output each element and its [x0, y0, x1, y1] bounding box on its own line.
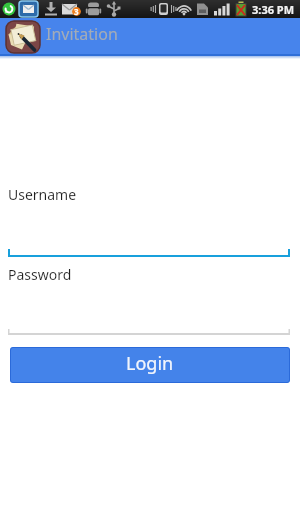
staticText: 3:36 PM	[252, 2, 295, 17]
button[interactable]	[8, 249, 290, 257]
button[interactable]	[8, 329, 290, 335]
staticText: Username	[8, 185, 77, 204]
button[interactable]: Login	[10, 347, 290, 383]
staticText: 3	[74, 6, 79, 17]
staticText: Login	[126, 351, 174, 376]
staticText: Password	[8, 265, 72, 284]
staticText: Invitation	[46, 23, 118, 45]
